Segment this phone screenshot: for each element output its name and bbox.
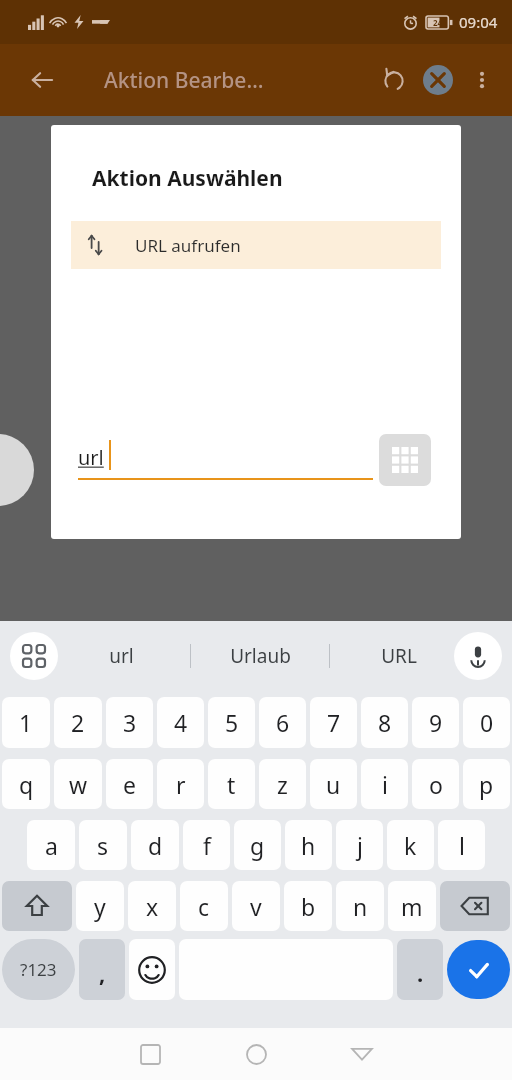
button[interactable]: y (76, 881, 124, 931)
button[interactable]: x (128, 881, 176, 931)
button[interactable]: 5 (208, 697, 255, 748)
button[interactable]: 2 (54, 697, 102, 748)
button[interactable]: l (438, 820, 485, 870)
button[interactable]: w (54, 759, 102, 809)
staticText: 3 (123, 707, 137, 738)
staticText: d (148, 830, 163, 861)
button[interactable]: h (285, 820, 332, 870)
button[interactable]: url (78, 437, 373, 480)
button[interactable]: Toolbar (10, 632, 58, 680)
staticText: 1 (19, 707, 33, 738)
button[interactable]: 3 (106, 697, 153, 748)
staticText: r (176, 769, 186, 800)
staticText: p (479, 769, 494, 800)
button[interactable]: 8 (361, 697, 408, 748)
button[interactable]: 9 (412, 697, 459, 748)
staticText: Urlaub (230, 643, 291, 669)
button[interactable]: , (79, 939, 125, 1000)
button[interactable]: d (131, 820, 179, 870)
button[interactable]: p (463, 759, 510, 809)
button[interactable]: 0 (463, 697, 510, 748)
button[interactable]: r (157, 759, 204, 809)
button[interactable]: m (388, 881, 436, 931)
staticText: 0 (480, 707, 494, 738)
button[interactable]: t (208, 759, 255, 809)
staticText: x (146, 891, 159, 922)
button[interactable]: s (79, 820, 127, 870)
button[interactable]: b (284, 881, 332, 931)
button[interactable]: URL aufrufen (71, 221, 441, 269)
staticText: t (227, 769, 236, 800)
button[interactable]: Back (22, 60, 62, 100)
button[interactable]: e (106, 759, 153, 809)
staticText: url (78, 444, 104, 471)
button[interactable]: 4 (157, 697, 204, 748)
staticText: k (404, 830, 417, 861)
button[interactable]: i (361, 759, 408, 809)
staticText: i (382, 769, 388, 800)
button[interactable]: Backspace (440, 881, 510, 931)
staticText: g (250, 830, 265, 861)
button[interactable]: . (397, 939, 443, 1000)
staticText: URL aufrufen (135, 234, 241, 257)
staticText: ?123 (20, 958, 57, 981)
button[interactable]: Keypad (379, 434, 431, 486)
button[interactable]: c (180, 881, 228, 931)
button[interactable]: Home (224, 1028, 288, 1080)
button[interactable]: u (310, 759, 357, 809)
staticText: e (123, 769, 136, 800)
button[interactable]: z (259, 759, 306, 809)
staticText: f (203, 830, 211, 861)
staticText: v (250, 891, 262, 922)
button[interactable]: Shift (2, 881, 72, 931)
staticText: n (353, 891, 368, 922)
button[interactable]: f (183, 820, 230, 870)
staticText: m (401, 891, 423, 922)
staticText: l (459, 830, 465, 861)
staticText: s (97, 830, 109, 861)
button[interactable]: Voice input (454, 632, 502, 680)
staticText: o (429, 769, 443, 800)
button[interactable]: ?123 (2, 939, 75, 1000)
staticText: 5 (225, 707, 239, 738)
staticText: 4 (174, 707, 188, 738)
staticText: y (94, 891, 106, 922)
staticText: u (326, 769, 341, 800)
button[interactable]: g (234, 820, 281, 870)
staticText: 6 (276, 707, 290, 738)
button[interactable]: Emoji (129, 939, 175, 1000)
button[interactable]: 7 (310, 697, 357, 748)
button[interactable]: Undo (372, 58, 416, 102)
staticText: c (198, 891, 210, 922)
button[interactable]: q (2, 759, 50, 809)
button[interactable]: More options (460, 58, 504, 102)
staticText: , (99, 958, 106, 988)
staticText: q (19, 769, 34, 800)
staticText: b (301, 891, 316, 922)
button[interactable]: url (52, 631, 190, 681)
button[interactable]: Recent apps (118, 1028, 182, 1080)
staticText: a (45, 830, 58, 861)
button[interactable]: Enter (447, 940, 510, 999)
staticText: 8 (378, 707, 392, 738)
button[interactable]: k (387, 820, 434, 870)
staticText: w (69, 769, 88, 800)
button[interactable]: 6 (259, 697, 306, 748)
staticText: h (301, 830, 316, 861)
button[interactable]: 1 (2, 697, 50, 748)
button[interactable]: Back (330, 1028, 394, 1080)
button[interactable]: j (336, 820, 383, 870)
button[interactable]: o (412, 759, 459, 809)
button[interactable]: v (232, 881, 280, 931)
staticText: url (109, 643, 134, 669)
button[interactable]: n (336, 881, 384, 931)
staticText: Aktion Auswählen (92, 164, 283, 193)
staticText: 2 (71, 707, 85, 738)
button[interactable]: Close (416, 58, 460, 102)
button[interactable]: Urlaub (191, 631, 329, 681)
staticText: Aktion Bearbe… (104, 66, 264, 95)
button[interactable]: a (27, 820, 75, 870)
staticText: 7 (327, 707, 341, 738)
button[interactable]: URL (330, 631, 468, 681)
